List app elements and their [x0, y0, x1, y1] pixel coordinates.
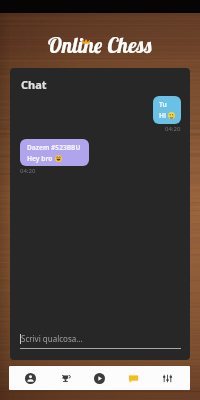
button[interactable]: Chat	[116, 366, 150, 390]
staticText: 04:20	[20, 167, 36, 175]
staticText: Chat	[21, 77, 47, 92]
staticText: Hi	[159, 111, 167, 120]
staticText: 04:20	[165, 125, 181, 133]
staticText: Hey bro	[27, 154, 53, 163]
staticText: Online Chess	[47, 32, 153, 58]
staticText: Tu	[159, 100, 167, 109]
button[interactable]: Play	[82, 366, 116, 390]
staticText: Dazem #523BBU	[27, 143, 81, 152]
button[interactable]: Settings	[150, 366, 184, 390]
button[interactable]: Profile	[13, 366, 48, 390]
button[interactable]: Tournaments	[48, 366, 82, 390]
staticText: Scrivi qualcosa...	[21, 333, 83, 344]
